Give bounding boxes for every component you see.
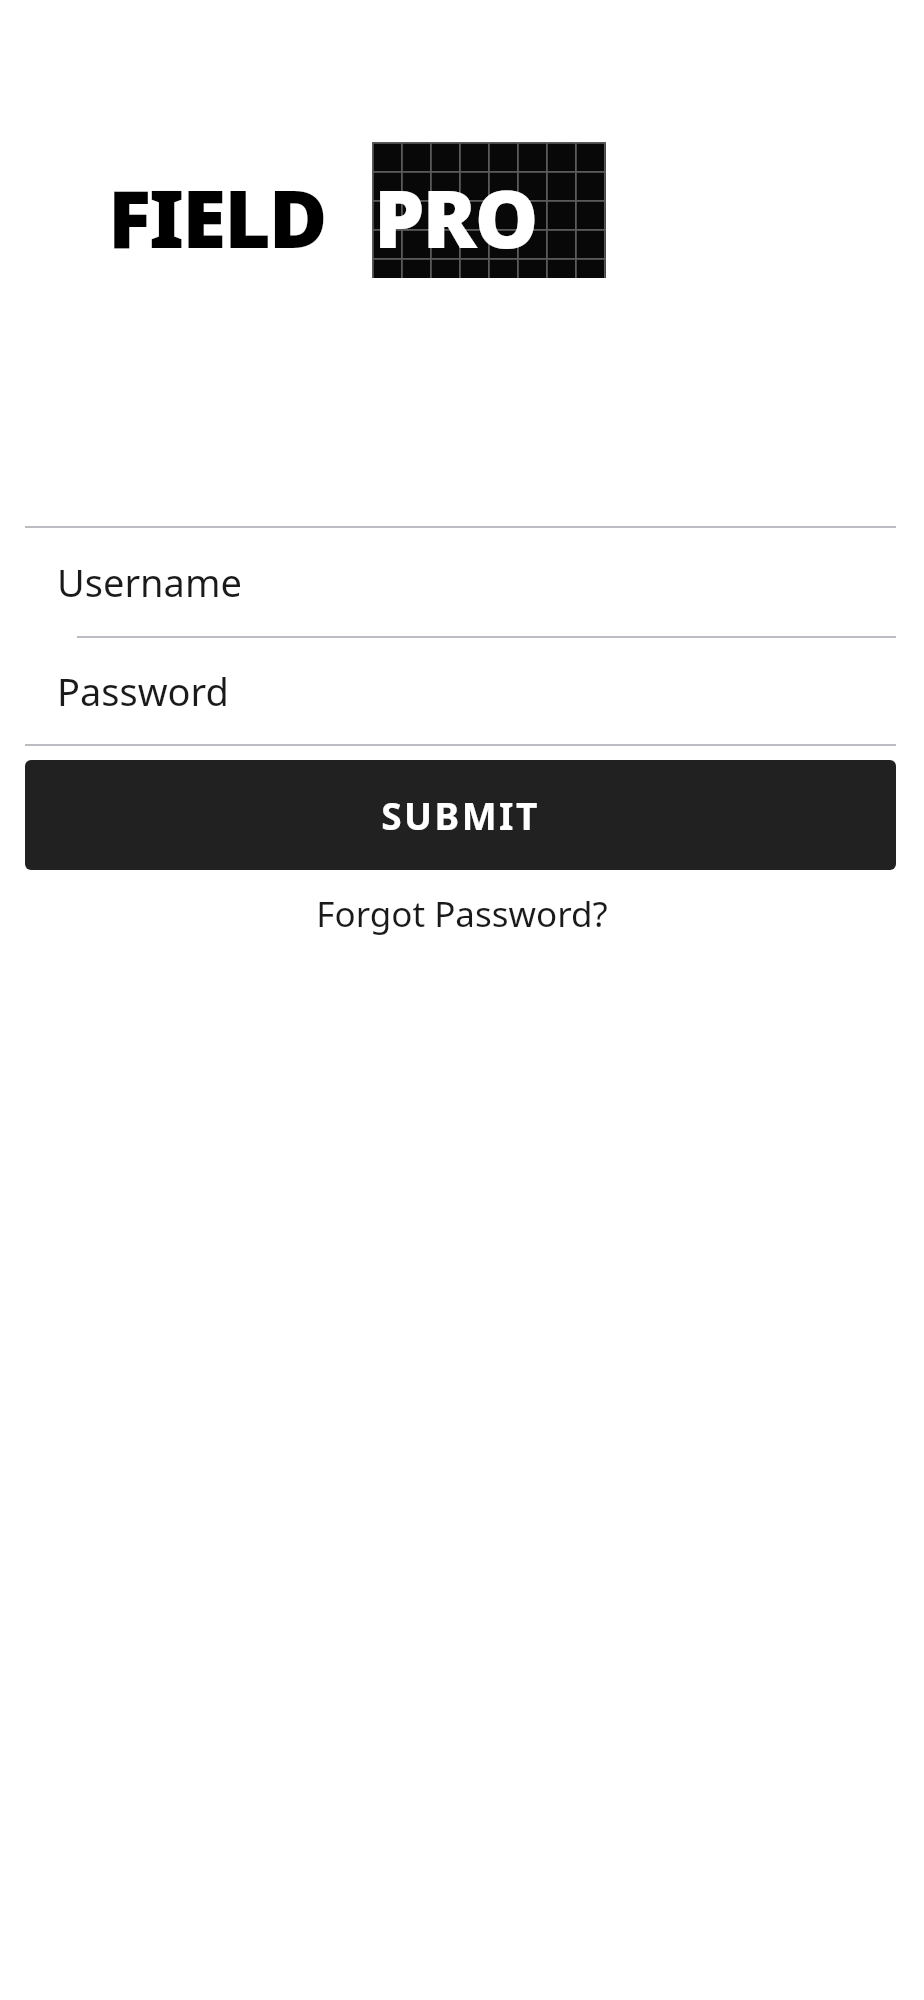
staticText: Username <box>57 556 242 608</box>
staticText: FIELD <box>108 162 326 271</box>
button[interactable]: Username <box>0 528 924 636</box>
staticText: PRO <box>374 162 537 271</box>
button[interactable]: Forgot Password? <box>316 890 608 938</box>
staticText: SUBMIT <box>381 790 540 840</box>
button[interactable]: SUBMIT <box>25 760 896 870</box>
staticText: Password <box>57 665 229 717</box>
button[interactable]: Password <box>0 638 924 744</box>
other: FieldPro logo <box>108 138 608 286</box>
staticText: Forgot Password? <box>316 890 608 938</box>
